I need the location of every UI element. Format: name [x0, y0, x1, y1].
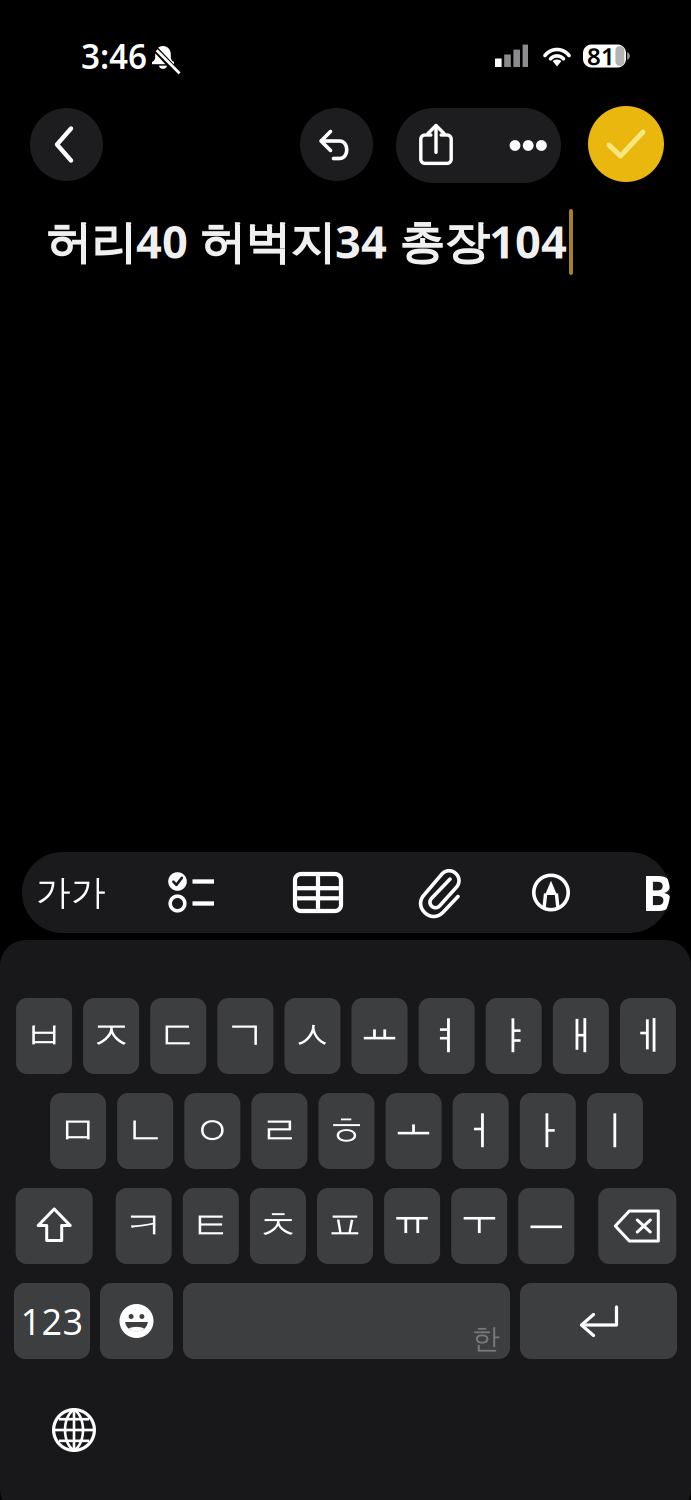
button[interactable]: Delete [598, 1188, 676, 1264]
button[interactable]: Numbers [14, 1283, 90, 1359]
button[interactable]: ㅎ [318, 1093, 374, 1169]
staticText: ㅊ [258, 1201, 298, 1250]
button[interactable]: ㅣ [587, 1093, 643, 1169]
staticText: ㅈ [91, 1011, 131, 1060]
staticText: ㅂ [24, 1011, 64, 1060]
button[interactable]: Table [264, 852, 372, 933]
button[interactable]: Attach [372, 852, 508, 933]
button[interactable]: More [476, 108, 561, 183]
button[interactable]: ㅠ [384, 1188, 440, 1264]
button[interactable]: Markup [508, 852, 594, 933]
staticText: ㅌ [191, 1201, 231, 1250]
button[interactable]: ㅕ [419, 998, 475, 1074]
staticText: ㅗ [394, 1097, 434, 1146]
button[interactable]: ㄹ [251, 1093, 307, 1169]
button[interactable]: ㅡ [518, 1188, 574, 1264]
staticText: ㄷ [158, 1011, 198, 1060]
button[interactable]: ㅗ [386, 1093, 442, 1169]
button[interactable]: ㅊ [250, 1188, 306, 1264]
staticText: ㅐ [561, 1011, 601, 1060]
button[interactable]: ㅐ [553, 998, 609, 1074]
button[interactable]: 가가 [22, 852, 120, 933]
staticText: ㅎ [326, 1106, 366, 1155]
staticText: ㅔ [628, 1011, 668, 1060]
button[interactable]: ㅏ [520, 1093, 576, 1169]
staticText: 81 [587, 40, 615, 72]
button[interactable]: ㅛ [352, 998, 408, 1074]
button[interactable]: ㅌ [183, 1188, 239, 1264]
staticText: ㅋ [124, 1201, 164, 1250]
button[interactable]: ㅋ [116, 1188, 172, 1264]
staticText: 한 [472, 1322, 500, 1356]
staticText: ㄹ [259, 1106, 299, 1155]
staticText: ㅁ [58, 1106, 98, 1155]
button[interactable]: ㅈ [83, 998, 139, 1074]
button[interactable]: ㅓ [453, 1093, 509, 1169]
button[interactable]: Back [30, 108, 103, 181]
staticText: ㅠ [392, 1192, 432, 1241]
staticText: ㅑ [494, 1011, 534, 1060]
button[interactable]: ㄷ [150, 998, 206, 1074]
staticText: ㅡ [526, 1192, 566, 1241]
button[interactable]: ㅑ [486, 998, 542, 1074]
button[interactable]: Shift [16, 1188, 93, 1264]
button[interactable]: Next keyboard [51, 1407, 97, 1453]
staticText: ㅍ [325, 1201, 365, 1250]
button[interactable]: Undo [300, 108, 373, 181]
staticText: ㅣ [595, 1106, 635, 1155]
button[interactable]: Share [396, 108, 476, 183]
button[interactable]: ㅂ [16, 998, 72, 1074]
staticText: ㄴ [125, 1106, 165, 1155]
staticText: ㄱ [225, 1011, 265, 1060]
button[interactable]: Checklist [120, 852, 264, 933]
button[interactable]: ㅅ [284, 998, 340, 1074]
staticText: 123 [20, 1297, 83, 1345]
button[interactable]: ㄴ [117, 1093, 173, 1169]
staticText: B [641, 861, 673, 924]
staticText: ㅕ [427, 1011, 467, 1060]
button[interactable]: ㅜ [451, 1188, 507, 1264]
staticText: ㅓ [461, 1106, 501, 1155]
staticText: ㅅ [292, 1011, 332, 1060]
button[interactable]: ㅇ [184, 1093, 240, 1169]
staticText: 허리40 허벅지34 총장104 [46, 211, 567, 271]
button[interactable]: ㅍ [317, 1188, 373, 1264]
button[interactable]: Emoji [100, 1283, 173, 1359]
staticText: ㅇ [192, 1106, 232, 1155]
staticText: ㅛ [360, 1002, 400, 1051]
button[interactable]: Bold [594, 852, 670, 933]
staticText: ㅏ [528, 1106, 568, 1155]
button[interactable]: ㅔ [620, 998, 676, 1074]
staticText: 3:46 [81, 34, 147, 78]
button[interactable]: Return [520, 1283, 677, 1359]
button[interactable]: ㄱ [217, 998, 273, 1074]
button[interactable]: Done [588, 106, 664, 182]
staticText: ㅜ [459, 1192, 499, 1241]
button[interactable]: Space [183, 1283, 510, 1359]
button[interactable]: ㅁ [50, 1093, 106, 1169]
staticText: 가가 [36, 871, 106, 914]
